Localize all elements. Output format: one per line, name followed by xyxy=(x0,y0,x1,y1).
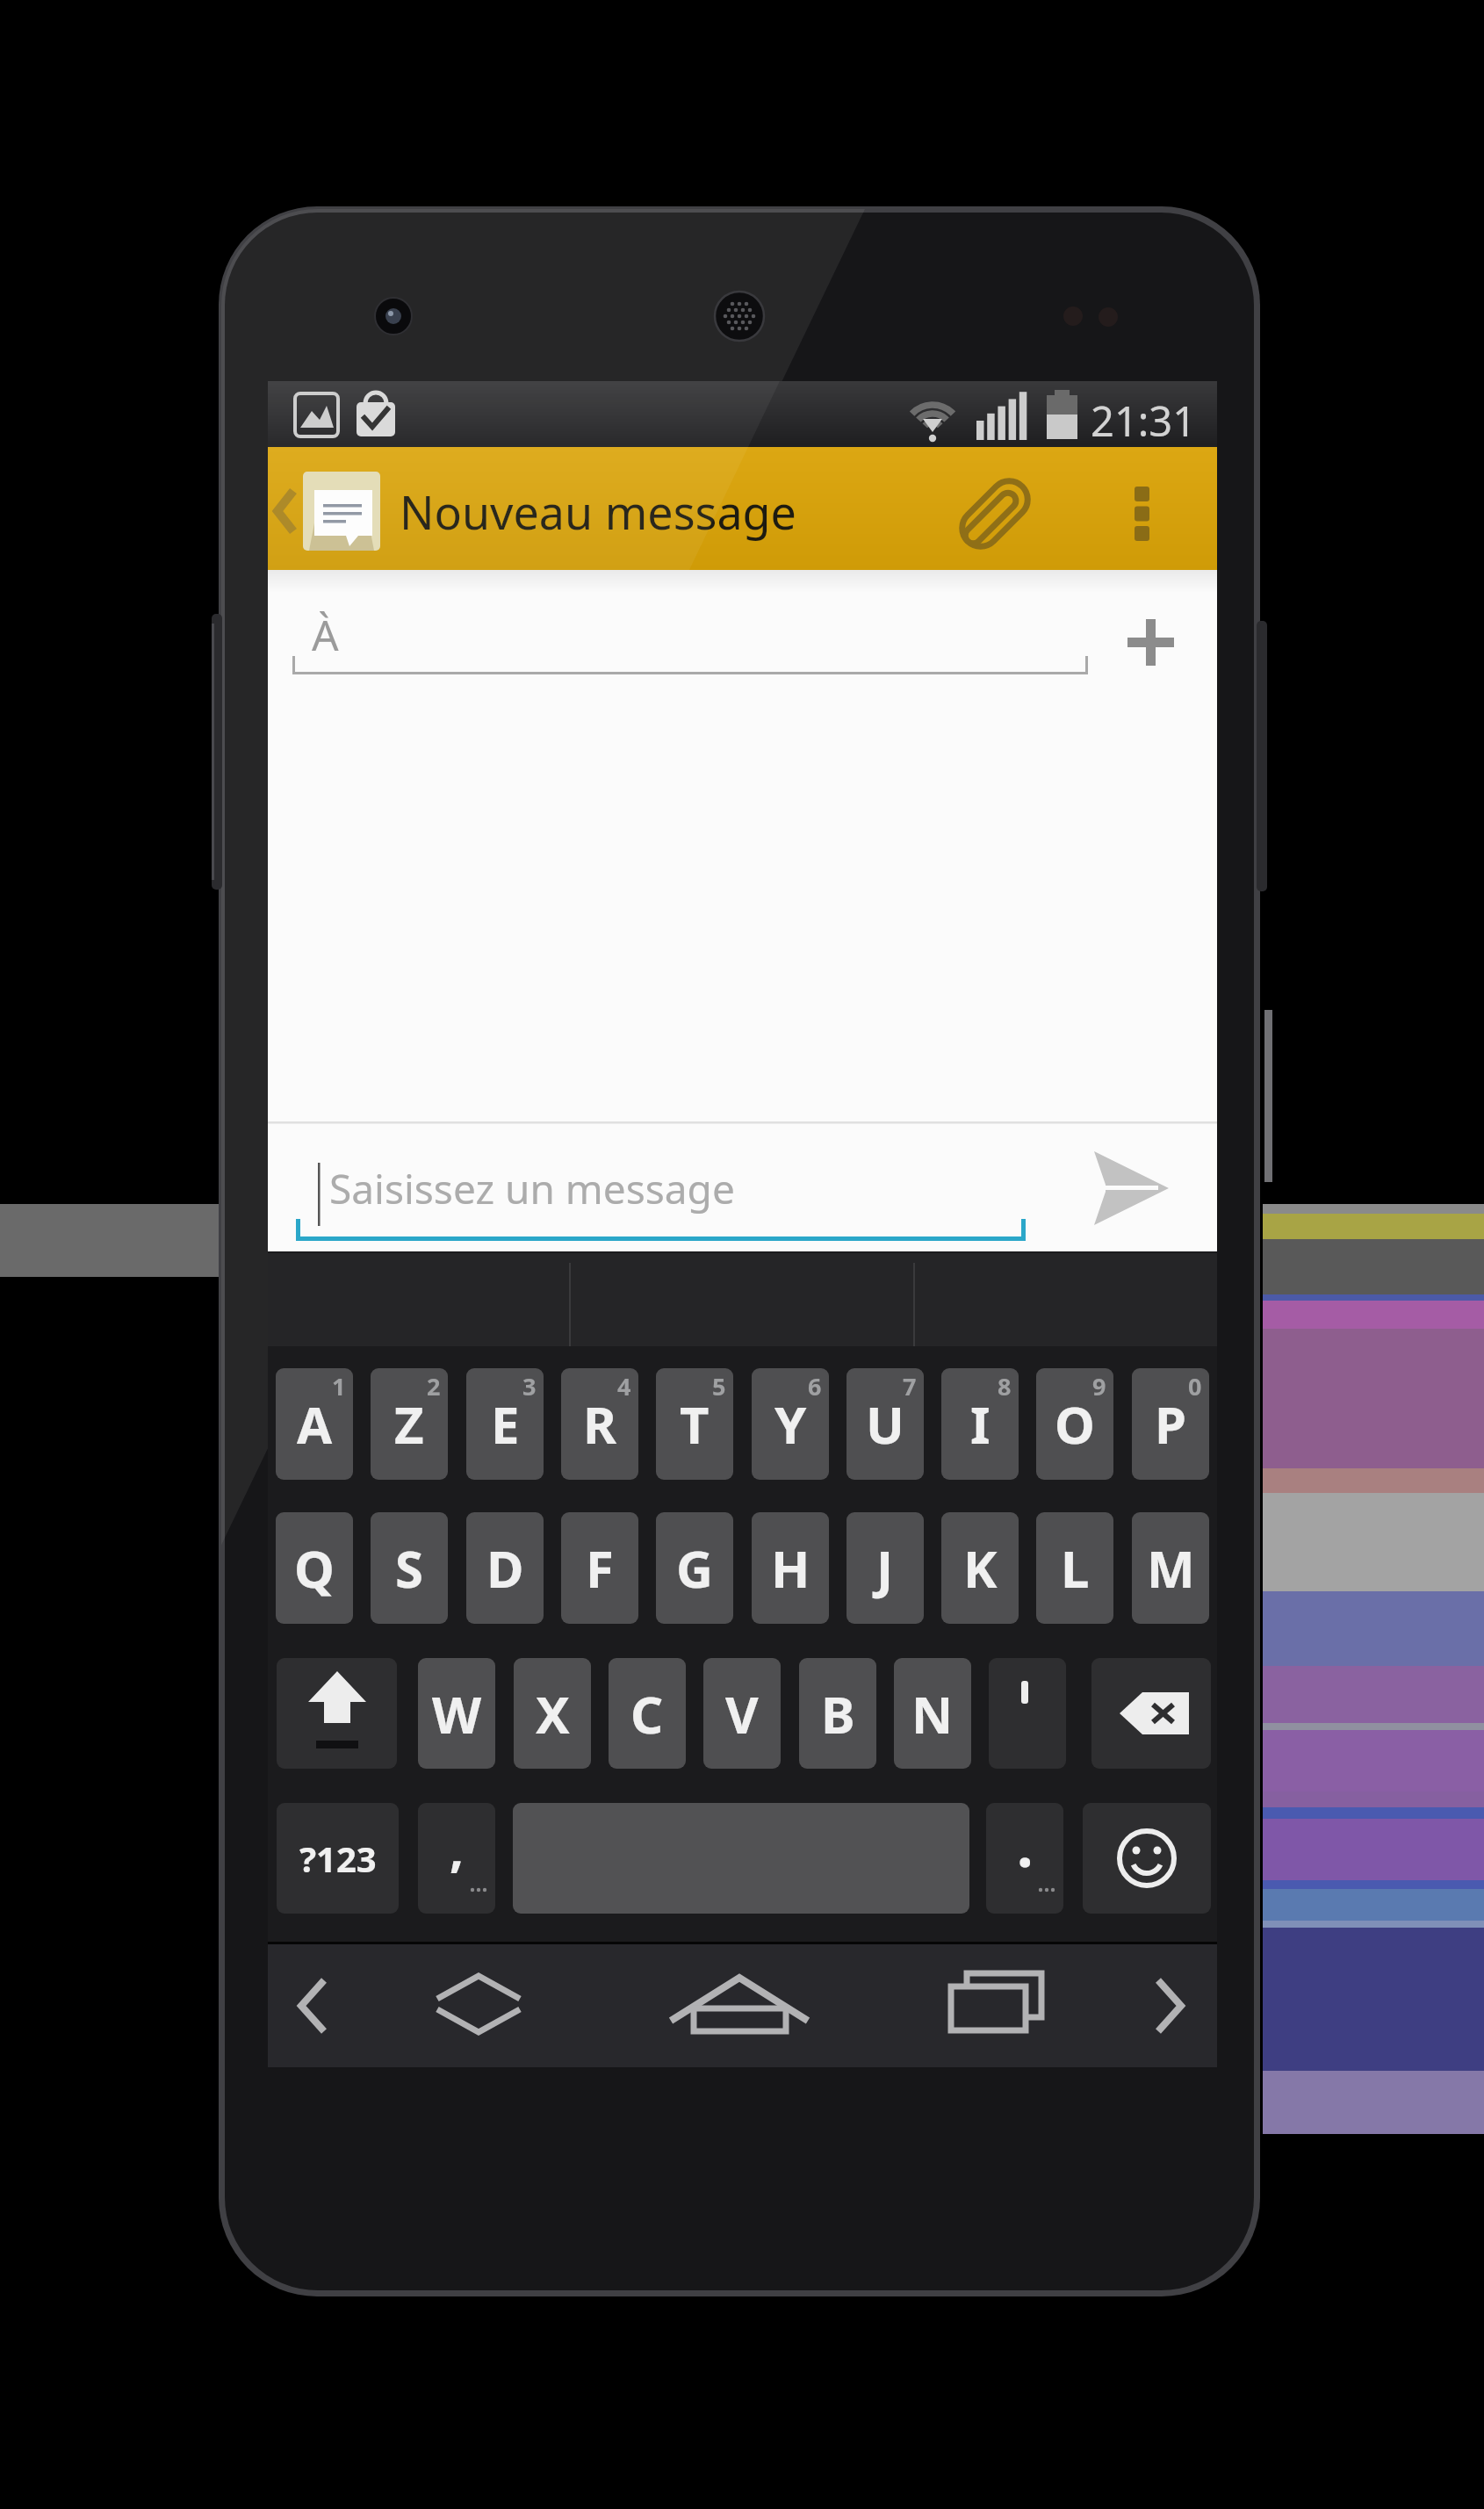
button[interactable] xyxy=(1064,1138,1194,1239)
staticText: 6 xyxy=(808,1370,822,1402)
staticText: A xyxy=(297,1389,333,1459)
button[interactable] xyxy=(277,1658,397,1769)
staticText: D xyxy=(486,1533,524,1603)
button[interactable]: G xyxy=(656,1512,733,1624)
button[interactable]: T xyxy=(656,1368,733,1480)
button[interactable]: Q xyxy=(276,1512,353,1624)
staticText: I xyxy=(970,1389,991,1459)
button[interactable] xyxy=(430,1967,527,2046)
staticText: T xyxy=(680,1389,710,1459)
button[interactable]: J xyxy=(846,1512,924,1624)
staticText: K xyxy=(963,1533,998,1603)
staticText: 4 xyxy=(617,1370,631,1402)
button[interactable] xyxy=(989,1658,1066,1769)
staticText: O xyxy=(1055,1389,1095,1459)
staticText: G xyxy=(676,1533,713,1603)
button[interactable]: B xyxy=(799,1658,876,1769)
button[interactable]: Z xyxy=(371,1368,448,1480)
staticText: H xyxy=(771,1533,810,1603)
button[interactable]: A xyxy=(276,1368,353,1480)
staticText: F xyxy=(586,1533,614,1603)
button[interactable] xyxy=(1133,1967,1203,2046)
button[interactable]: K xyxy=(941,1512,1019,1624)
staticText: U xyxy=(866,1389,904,1459)
button[interactable]: X xyxy=(514,1658,591,1769)
button[interactable]: ?123 xyxy=(277,1803,399,1914)
button[interactable]: W xyxy=(418,1658,495,1769)
staticText: Nouveau message xyxy=(400,480,796,543)
staticText: P xyxy=(1155,1389,1187,1459)
button[interactable] xyxy=(1091,1658,1211,1769)
staticText: C xyxy=(630,1679,664,1748)
staticText: 7 xyxy=(903,1370,917,1402)
button[interactable] xyxy=(944,465,1045,562)
staticText: 9 xyxy=(1092,1370,1106,1402)
button[interactable] xyxy=(270,465,385,553)
staticText: 21:31 xyxy=(1091,393,1197,449)
staticText: S xyxy=(395,1533,423,1603)
staticText: . xyxy=(1017,1805,1034,1884)
button[interactable]: R xyxy=(561,1368,638,1480)
staticText: 0 xyxy=(1188,1370,1202,1402)
button[interactable]: I xyxy=(941,1368,1019,1480)
button[interactable]: H xyxy=(752,1512,829,1624)
staticText: À xyxy=(312,606,339,663)
button[interactable]: S xyxy=(371,1512,448,1624)
staticText: B xyxy=(821,1679,855,1748)
button[interactable]: V xyxy=(703,1658,781,1769)
staticText: 8 xyxy=(998,1370,1012,1402)
staticText: 1 xyxy=(332,1370,346,1402)
button[interactable]: O xyxy=(1036,1368,1113,1480)
staticText: , xyxy=(450,1814,464,1881)
button[interactable]: E xyxy=(466,1368,544,1480)
staticText: 5 xyxy=(712,1370,726,1402)
button[interactable] xyxy=(1108,603,1192,682)
staticText: Saisissez un message xyxy=(329,1161,735,1216)
staticText: V xyxy=(725,1679,759,1748)
button[interactable]: D xyxy=(466,1512,544,1624)
button[interactable]: M xyxy=(1132,1512,1209,1624)
staticText: N xyxy=(911,1679,954,1748)
button[interactable]: L xyxy=(1036,1512,1113,1624)
button[interactable]: F xyxy=(561,1512,638,1624)
button[interactable]: . xyxy=(986,1803,1063,1914)
staticText: R xyxy=(583,1389,617,1459)
staticText: 3 xyxy=(522,1370,537,1402)
staticText: L xyxy=(1061,1533,1090,1603)
button[interactable] xyxy=(1105,461,1184,558)
staticText: E xyxy=(491,1389,520,1459)
button[interactable]: C xyxy=(609,1658,686,1769)
button[interactable]: , xyxy=(418,1803,495,1914)
staticText: M xyxy=(1147,1533,1195,1603)
button[interactable] xyxy=(281,1967,360,2046)
button[interactable] xyxy=(940,1967,1054,2046)
staticText: ?123 xyxy=(299,1835,377,1882)
button[interactable]: U xyxy=(846,1368,924,1480)
button[interactable]: P xyxy=(1132,1368,1209,1480)
staticText: Y xyxy=(774,1389,807,1459)
staticText: J xyxy=(876,1533,894,1603)
button[interactable]: À xyxy=(292,590,1088,676)
button[interactable]: Y xyxy=(752,1368,829,1480)
staticText: 2 xyxy=(427,1370,441,1402)
staticText: X xyxy=(536,1679,570,1748)
button[interactable] xyxy=(1083,1803,1211,1914)
staticText: Z xyxy=(394,1389,424,1459)
button[interactable] xyxy=(685,1967,799,2046)
button[interactable]: N xyxy=(894,1658,971,1769)
staticText: W xyxy=(432,1679,482,1748)
staticText: Q xyxy=(294,1533,335,1603)
button[interactable]: Saisissez un message xyxy=(292,1133,1030,1243)
